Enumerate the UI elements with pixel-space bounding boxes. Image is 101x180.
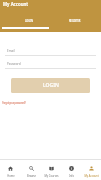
staticText: REGISTER [69, 19, 81, 22]
staticText: Email [7, 49, 15, 53]
staticText: LOGIN [25, 19, 33, 22]
staticText: Password [7, 62, 21, 66]
button[interactable]: Forgot your password? [2, 101, 26, 105]
button[interactable]: My Courses [41, 160, 61, 178]
button[interactable]: Email [5, 47, 96, 56]
button[interactable]: Password [5, 60, 96, 69]
staticText: Home [7, 174, 15, 178]
staticText: My Account [3, 1, 29, 7]
button[interactable]: LOGIN [6, 16, 52, 24]
staticText: Info [69, 174, 74, 178]
staticText: Browse [27, 174, 36, 178]
staticText: My Account [84, 174, 99, 178]
button[interactable]: Home [0, 160, 21, 178]
staticText: Forgot your password? [2, 101, 26, 105]
button[interactable]: Browse [21, 160, 41, 178]
button[interactable]: My Account [81, 160, 101, 178]
staticText: My Courses [44, 174, 59, 178]
staticText: LOGIN [43, 82, 59, 89]
button[interactable]: LOGIN [11, 78, 90, 93]
button[interactable]: REGISTER [52, 16, 98, 24]
button[interactable]: Info [61, 160, 81, 178]
